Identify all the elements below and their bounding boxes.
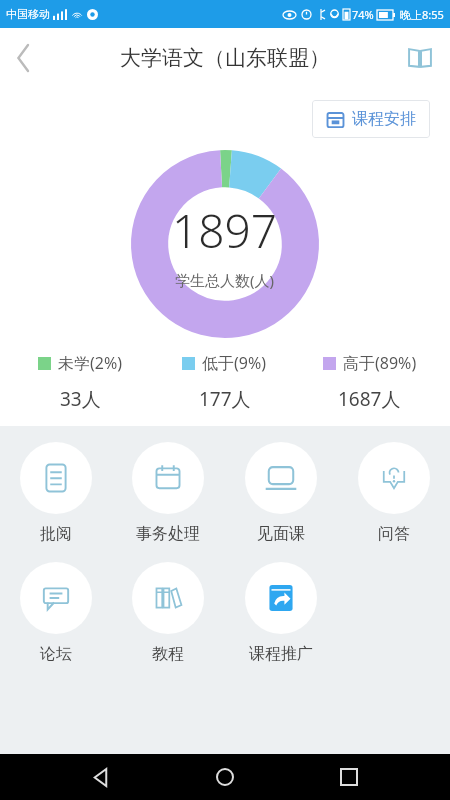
staticText: 1687人: [338, 386, 401, 412]
staticText: 见面课: [257, 524, 305, 544]
button[interactable]: 见面课: [224, 442, 337, 544]
button[interactable]: Back: [78, 754, 124, 800]
button[interactable]: 问答: [337, 442, 450, 544]
button[interactable]: 课程推广: [224, 562, 337, 664]
staticText: 教程: [152, 644, 184, 664]
staticText: 低于(9%): [202, 352, 267, 374]
button[interactable]: 批阅: [0, 442, 112, 544]
button[interactable]: 论坛: [0, 562, 112, 664]
staticText: 论坛: [40, 644, 72, 664]
button[interactable]: 课程安排: [312, 100, 430, 138]
staticText: 1897: [172, 199, 278, 262]
staticText: 74%: [352, 7, 374, 22]
button[interactable]: Course book: [398, 36, 442, 80]
button[interactable]: 教程: [112, 562, 224, 664]
staticText: 177人: [199, 386, 251, 412]
staticText: 33人: [60, 386, 101, 412]
staticText: 课程安排: [352, 109, 416, 129]
button[interactable]: Home: [202, 754, 248, 800]
button[interactable]: 事务处理: [112, 442, 224, 544]
staticText: 批阅: [40, 524, 72, 544]
staticText: 高于(89%): [343, 352, 417, 374]
staticText: 晚上8:55: [400, 7, 444, 22]
button[interactable]: Back: [0, 34, 48, 82]
button[interactable]: Recents: [326, 754, 372, 800]
staticText: 中国移动: [6, 7, 50, 21]
staticText: 事务处理: [136, 524, 200, 544]
staticText: 课程推广: [249, 644, 313, 664]
staticText: 问答: [378, 524, 410, 544]
staticText: 未学(2%): [58, 352, 123, 374]
staticText: 大学语文（山东联盟）: [120, 45, 330, 71]
staticText: 学生总人数(人): [175, 270, 275, 290]
